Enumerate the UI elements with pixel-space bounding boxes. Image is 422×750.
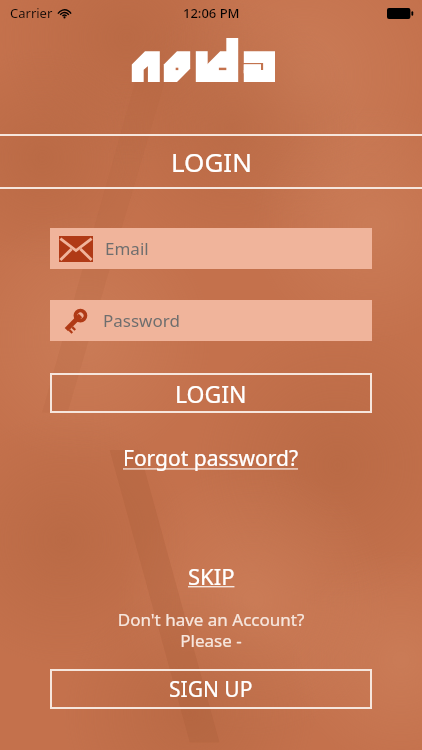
- staticText: SKIP: [188, 561, 235, 591]
- staticText: Don't have an Account? Please -: [0, 608, 422, 652]
- staticText: Password: [103, 309, 180, 332]
- staticText: Forgot password?: [123, 444, 299, 473]
- staticText: LOGIN: [171, 144, 252, 179]
- staticText: SIGN UP: [169, 675, 253, 704]
- button[interactable]: SKIP: [184, 559, 239, 593]
- button[interactable]: Password: [50, 300, 372, 341]
- staticText: Email: [105, 237, 149, 260]
- staticText: 12:06 PM: [183, 4, 240, 22]
- button[interactable]: LOGIN: [50, 373, 372, 413]
- staticText: LOGIN: [175, 378, 247, 409]
- button[interactable]: Forgot password?: [119, 442, 303, 475]
- button[interactable]: Email: [50, 228, 372, 269]
- button[interactable]: SIGN UP: [50, 669, 372, 709]
- staticText: Carrier: [10, 4, 53, 22]
